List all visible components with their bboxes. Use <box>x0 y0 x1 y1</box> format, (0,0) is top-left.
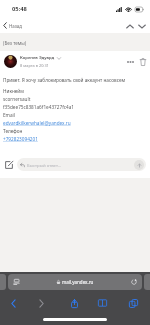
button[interactable]: Закладки <box>94 292 110 314</box>
staticText: Привет. Я хочу заблокировать свой аккаун… <box>3 77 126 83</box>
button[interactable]: Вкладки <box>125 292 141 314</box>
button[interactable]: Быстрый ответ... <box>17 158 146 171</box>
staticText: mail.yandex.ru <box>62 279 94 285</box>
staticText: (Без темы) <box>3 40 27 46</box>
staticText: +792823094201 <box>3 136 38 142</box>
staticText: Быстрый ответ... <box>27 162 134 168</box>
button[interactable]: Назад <box>5 292 21 314</box>
button[interactable]: Удалить <box>137 56 149 68</box>
button[interactable]: Обновить <box>128 276 140 288</box>
button[interactable]: Написать <box>2 158 15 171</box>
button[interactable]: Размер текста <box>10 276 22 288</box>
button[interactable]: Ещё <box>124 56 136 68</box>
staticText: Телефон <box>3 128 23 134</box>
button[interactable]: edvardkilkerwhalel@yandex.ru <box>3 119 147 127</box>
staticText: Назад <box>9 23 22 29</box>
staticText: 05:48 <box>12 5 27 13</box>
button[interactable]: Поделиться <box>66 292 82 314</box>
staticText: Никнейм <box>3 88 24 94</box>
staticText: scornersault <box>3 96 31 102</box>
button[interactable]: Вперёд <box>33 292 49 314</box>
button[interactable]: mail.yandex.ru <box>8 274 142 290</box>
button[interactable]: Назад <box>0 18 26 33</box>
button[interactable]: +792823094201 <box>3 135 147 143</box>
button[interactable]: Предыдущее письмо <box>124 20 136 32</box>
staticText: Email <box>3 112 16 118</box>
staticText: f35dee75c8381a6f1e43727fc4a1 <box>3 104 74 110</box>
staticText: edvardkilkerwhalel@yandex.ru <box>3 120 71 126</box>
button[interactable]: Следующее письмо <box>136 20 148 32</box>
staticText: Коренев Эдуард <box>20 55 55 61</box>
staticText: 8 марта в 20:31 <box>20 63 49 68</box>
